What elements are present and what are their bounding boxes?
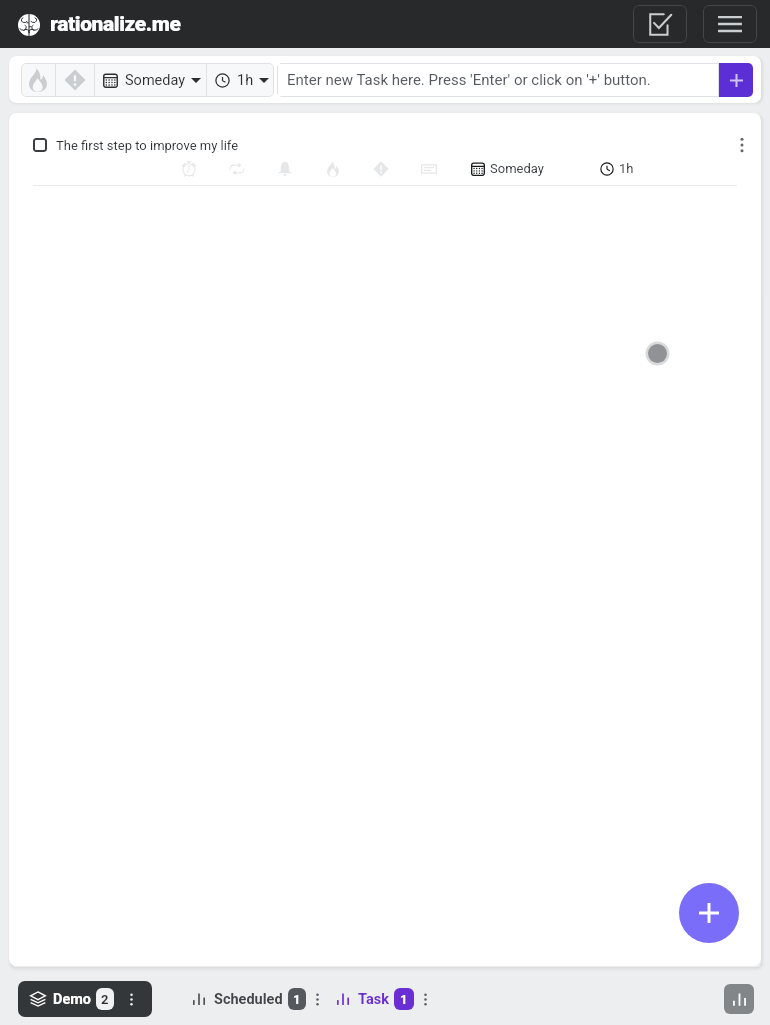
button[interactable]: Repeat [224, 156, 249, 181]
button[interactable]: Someday [95, 63, 206, 97]
button[interactable]: More options [729, 132, 755, 158]
button[interactable]: Enter new Task here. Press 'Enter' or cl… [277, 63, 719, 97]
button[interactable]: Someday [471, 161, 544, 176]
button[interactable]: Scheduled [192, 981, 325, 1017]
button[interactable]: Add [679, 883, 739, 943]
button[interactable]: Tasks [633, 5, 687, 43]
staticText: rationalize.me [50, 12, 181, 37]
button[interactable]: Menu [703, 5, 757, 43]
staticText: Demo [53, 991, 91, 1008]
button[interactable]: Urgency [320, 156, 345, 181]
staticText: The first step to improve my life [56, 138, 239, 153]
button[interactable]: Task [336, 981, 433, 1017]
button[interactable]: 1h [207, 63, 274, 97]
button[interactable]: Importance [368, 156, 393, 181]
staticText: 1h [237, 72, 254, 89]
button[interactable]: Reminder [272, 156, 297, 181]
staticText: Someday [125, 72, 186, 89]
staticText: 1 [293, 992, 301, 1007]
button[interactable]: Urgency [21, 63, 55, 97]
button[interactable]: Alarm [176, 156, 201, 181]
button[interactable]: Demo [18, 981, 152, 1017]
button[interactable]: Add task [719, 63, 753, 97]
button[interactable]: Note [416, 156, 441, 181]
button[interactable]: Statistics [724, 984, 754, 1014]
button[interactable]: 1h [600, 161, 634, 176]
button[interactable]: rationalize.me [18, 12, 181, 37]
staticText: 1 [400, 992, 408, 1007]
staticText: Scheduled [214, 991, 283, 1008]
button[interactable]: Importance [56, 63, 94, 97]
staticText: Enter new Task here. Press 'Enter' or cl… [287, 71, 651, 89]
staticText: 2 [101, 992, 109, 1007]
button[interactable]: The first step to improve my life [9, 113, 761, 177]
staticText: Task [358, 991, 389, 1008]
staticText: 1h [619, 161, 634, 176]
staticText: Someday [490, 161, 544, 176]
